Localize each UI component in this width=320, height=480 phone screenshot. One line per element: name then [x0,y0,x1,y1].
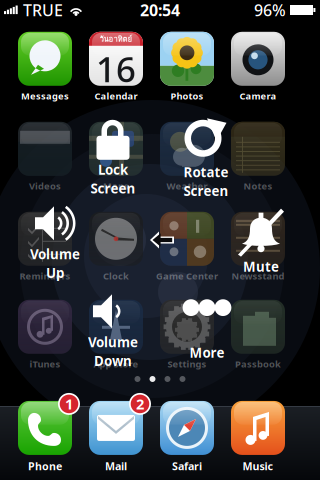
button[interactable]: Notes [222,120,294,194]
staticText: Screen [90,179,135,197]
button[interactable]: 1 [9,400,81,474]
staticText: Messages [21,90,69,102]
staticText: Phone [28,459,62,473]
staticText: วันอาทิตย์ [99,33,132,45]
button[interactable]: Passbook [222,298,294,372]
button[interactable]: Volume Up [9,198,101,286]
button[interactable]: Settings [151,298,223,372]
staticText: App Store [93,358,138,370]
staticText: 1 [65,394,73,414]
staticText: 20:54 [140,0,180,21]
button[interactable]: Newsstand [222,210,294,284]
button[interactable]: Camera [222,30,294,104]
staticText: Up [46,264,64,282]
staticText: Camera [239,90,276,102]
button[interactable]: 2 [80,400,152,474]
button[interactable]: Videos [9,120,81,194]
button[interactable]: App Store [80,298,152,372]
staticText: Reminders [19,270,70,282]
button[interactable]: Lock Screen [67,113,159,201]
staticText: Volume [88,333,138,351]
staticText: Rotate [183,163,228,181]
button[interactable]: Rotate Screen [160,113,252,201]
button[interactable]: Photos [151,30,223,104]
staticText: Game Center [156,270,218,282]
staticText: 16 [96,46,136,92]
staticText: Calendar [94,90,137,102]
staticText: Photos [170,90,203,102]
staticText: Videos [29,180,61,192]
button[interactable]: Messages [9,30,81,104]
button[interactable]: Reminders [9,210,81,284]
staticText: Mute [243,258,279,275]
staticText: Notes [243,180,272,192]
staticText: Clock [103,270,129,282]
staticText: More [189,344,224,361]
button[interactable]: iTunes [9,298,81,372]
button[interactable]: More [161,286,253,374]
staticText: Volume [30,245,80,263]
staticText: Lock [98,161,128,178]
staticText: Music [242,459,273,473]
button[interactable]: Game Center [151,210,223,284]
staticText: Passbook [235,358,281,370]
staticText: TRUE [23,0,63,21]
staticText: Safari [172,459,202,473]
staticText: Maps [103,180,129,192]
button[interactable]: Volume Down [67,286,159,374]
staticText: iTunes [29,358,60,370]
button[interactable]: Music [222,400,294,474]
button[interactable]: Clock [80,210,152,284]
staticText: Newsstand [231,270,284,282]
staticText: Screen [183,182,228,200]
button[interactable]: Maps [80,120,152,194]
staticText: Down [94,352,132,370]
staticText: Settings [167,358,206,370]
button[interactable]: Safari [151,400,223,474]
button[interactable]: Mute [215,198,307,286]
staticText: 2 [136,394,144,414]
staticText: 96% [254,0,286,21]
button[interactable]: วันอาทิตย์ [80,30,152,104]
button[interactable]: Weather [151,120,223,194]
staticText: Mail [105,459,127,473]
staticText: Weather [166,180,207,192]
